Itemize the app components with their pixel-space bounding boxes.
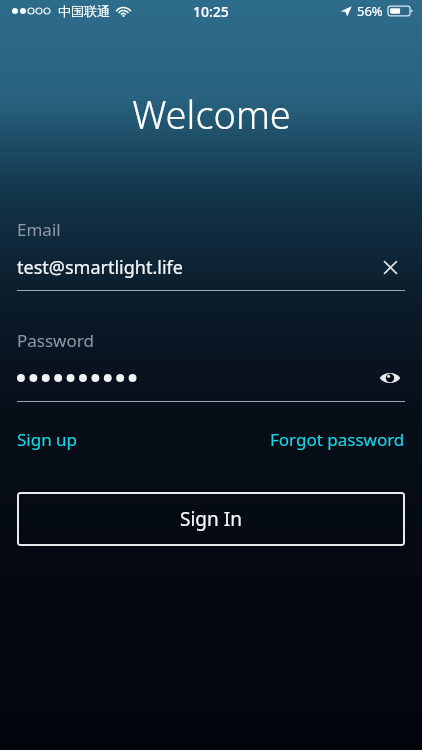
button[interactable]: Clear email	[375, 253, 405, 281]
button[interactable]: Sign In	[17, 492, 405, 546]
staticText: Sign In	[180, 506, 242, 532]
staticText: Password	[17, 329, 94, 352]
staticText: Forgot password	[270, 428, 405, 451]
staticText: Sign up	[17, 428, 78, 451]
staticText: test@smartlight.life	[17, 255, 375, 280]
staticText: Welcome	[132, 88, 291, 140]
staticText: 56%	[357, 2, 383, 20]
staticText: 10:25	[193, 2, 229, 21]
button[interactable]: Forgot password	[270, 424, 405, 455]
staticText: 中国联通	[58, 3, 110, 19]
button[interactable]: Show password	[375, 364, 405, 392]
button[interactable]: Sign up	[17, 424, 78, 455]
staticText: Email	[17, 218, 61, 241]
